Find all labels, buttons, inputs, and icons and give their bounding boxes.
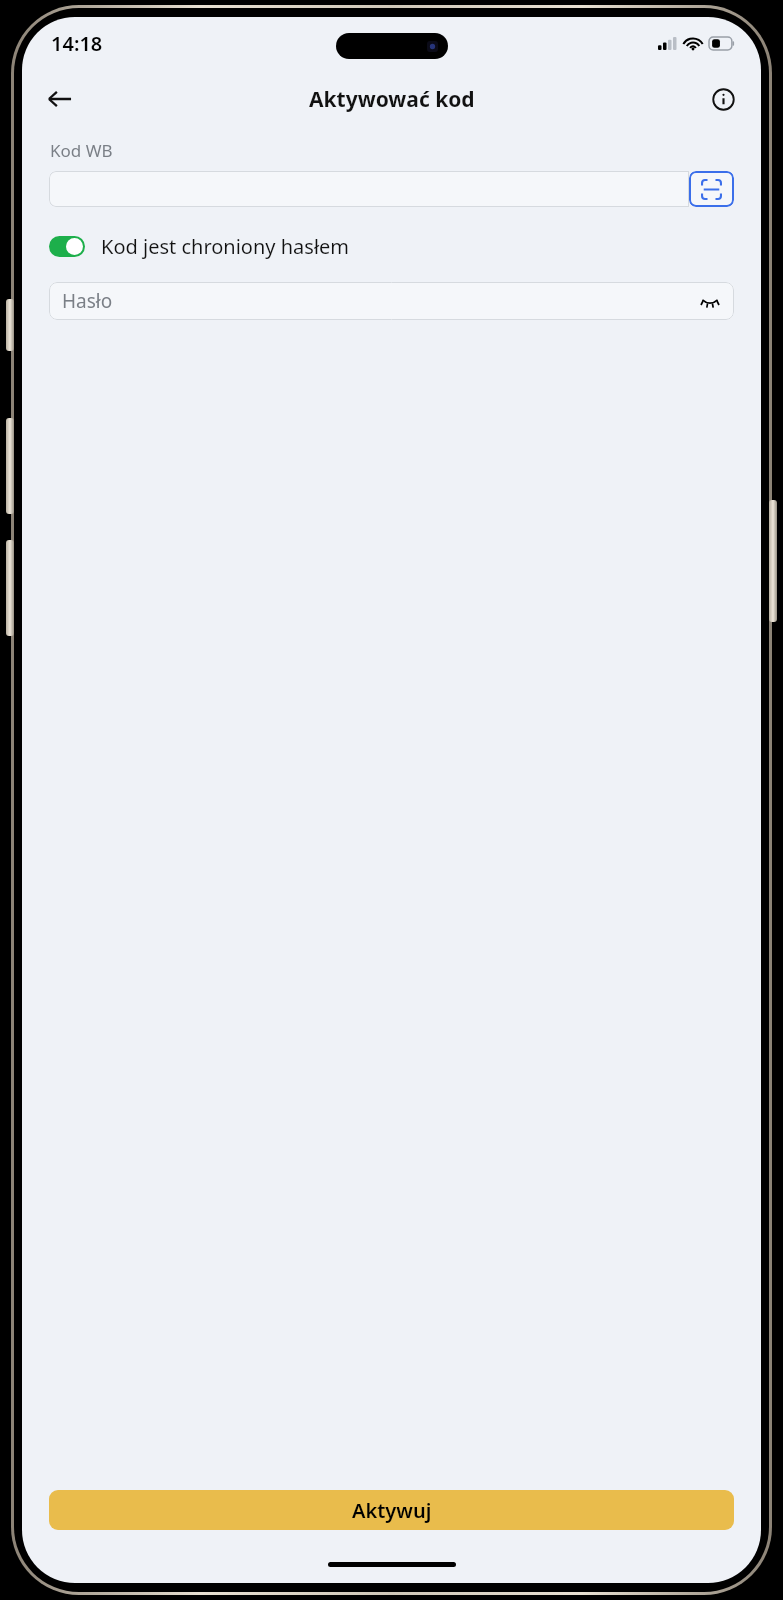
button[interactable]: Hasło <box>49 282 734 320</box>
button[interactable]: Kod jest chroniony hasłem <box>49 233 734 260</box>
staticText: Hasło <box>62 288 113 314</box>
staticText: 14:18 <box>51 30 103 57</box>
button[interactable]: Aktywuj <box>49 1490 734 1530</box>
staticText: Aktywować kod <box>309 85 475 114</box>
button[interactable]: Scan code <box>689 171 734 207</box>
staticText: Kod WB <box>50 139 113 162</box>
button[interactable]: Back <box>36 75 84 123</box>
staticText: Aktywuj <box>352 1497 432 1524</box>
button[interactable] <box>49 171 689 207</box>
button[interactable]: Show password <box>696 287 724 315</box>
staticText: Kod jest chroniony hasłem <box>101 233 350 260</box>
button[interactable]: Info <box>699 75 747 123</box>
